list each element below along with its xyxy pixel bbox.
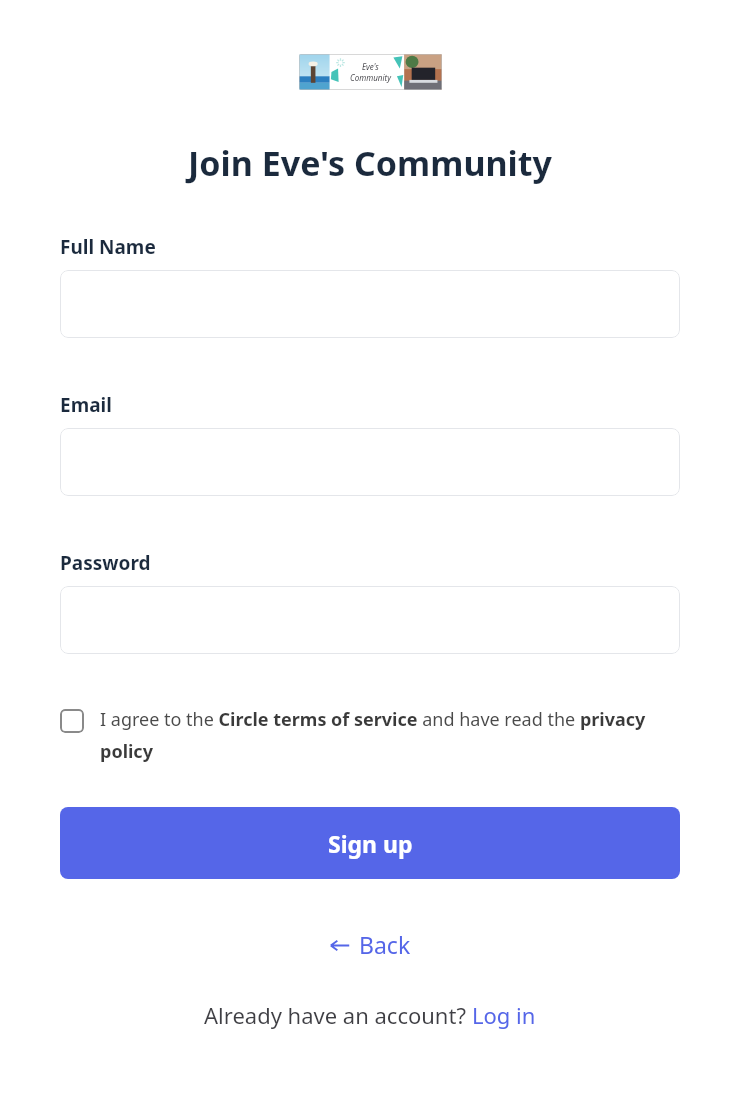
staticText: Back (359, 929, 411, 960)
staticText: Join Eve's Community (188, 140, 552, 186)
staticText: Sign up (328, 828, 413, 859)
button[interactable]: I agree to the Circle terms of service a… (60, 707, 680, 763)
button[interactable]: Email input field (60, 428, 680, 496)
staticText: Email (60, 392, 112, 418)
staticText: Eve's (362, 61, 379, 72)
staticText: Community (350, 72, 391, 83)
staticText: Log in (472, 1000, 536, 1030)
staticText: Already have an account? (204, 1000, 472, 1030)
staticText: Full Name (60, 234, 156, 260)
staticText: Password (60, 550, 151, 576)
staticText: I agree to the Circle terms of service a… (100, 707, 680, 763)
button[interactable]: Already have an account? (204, 1000, 536, 1030)
button[interactable]: Full Name input field (60, 270, 680, 338)
button[interactable]: Password input field (60, 586, 680, 654)
button[interactable]: Eve's Community banner (299, 54, 442, 90)
button[interactable]: Sign up (60, 807, 680, 879)
button[interactable]: Back (315, 923, 425, 966)
